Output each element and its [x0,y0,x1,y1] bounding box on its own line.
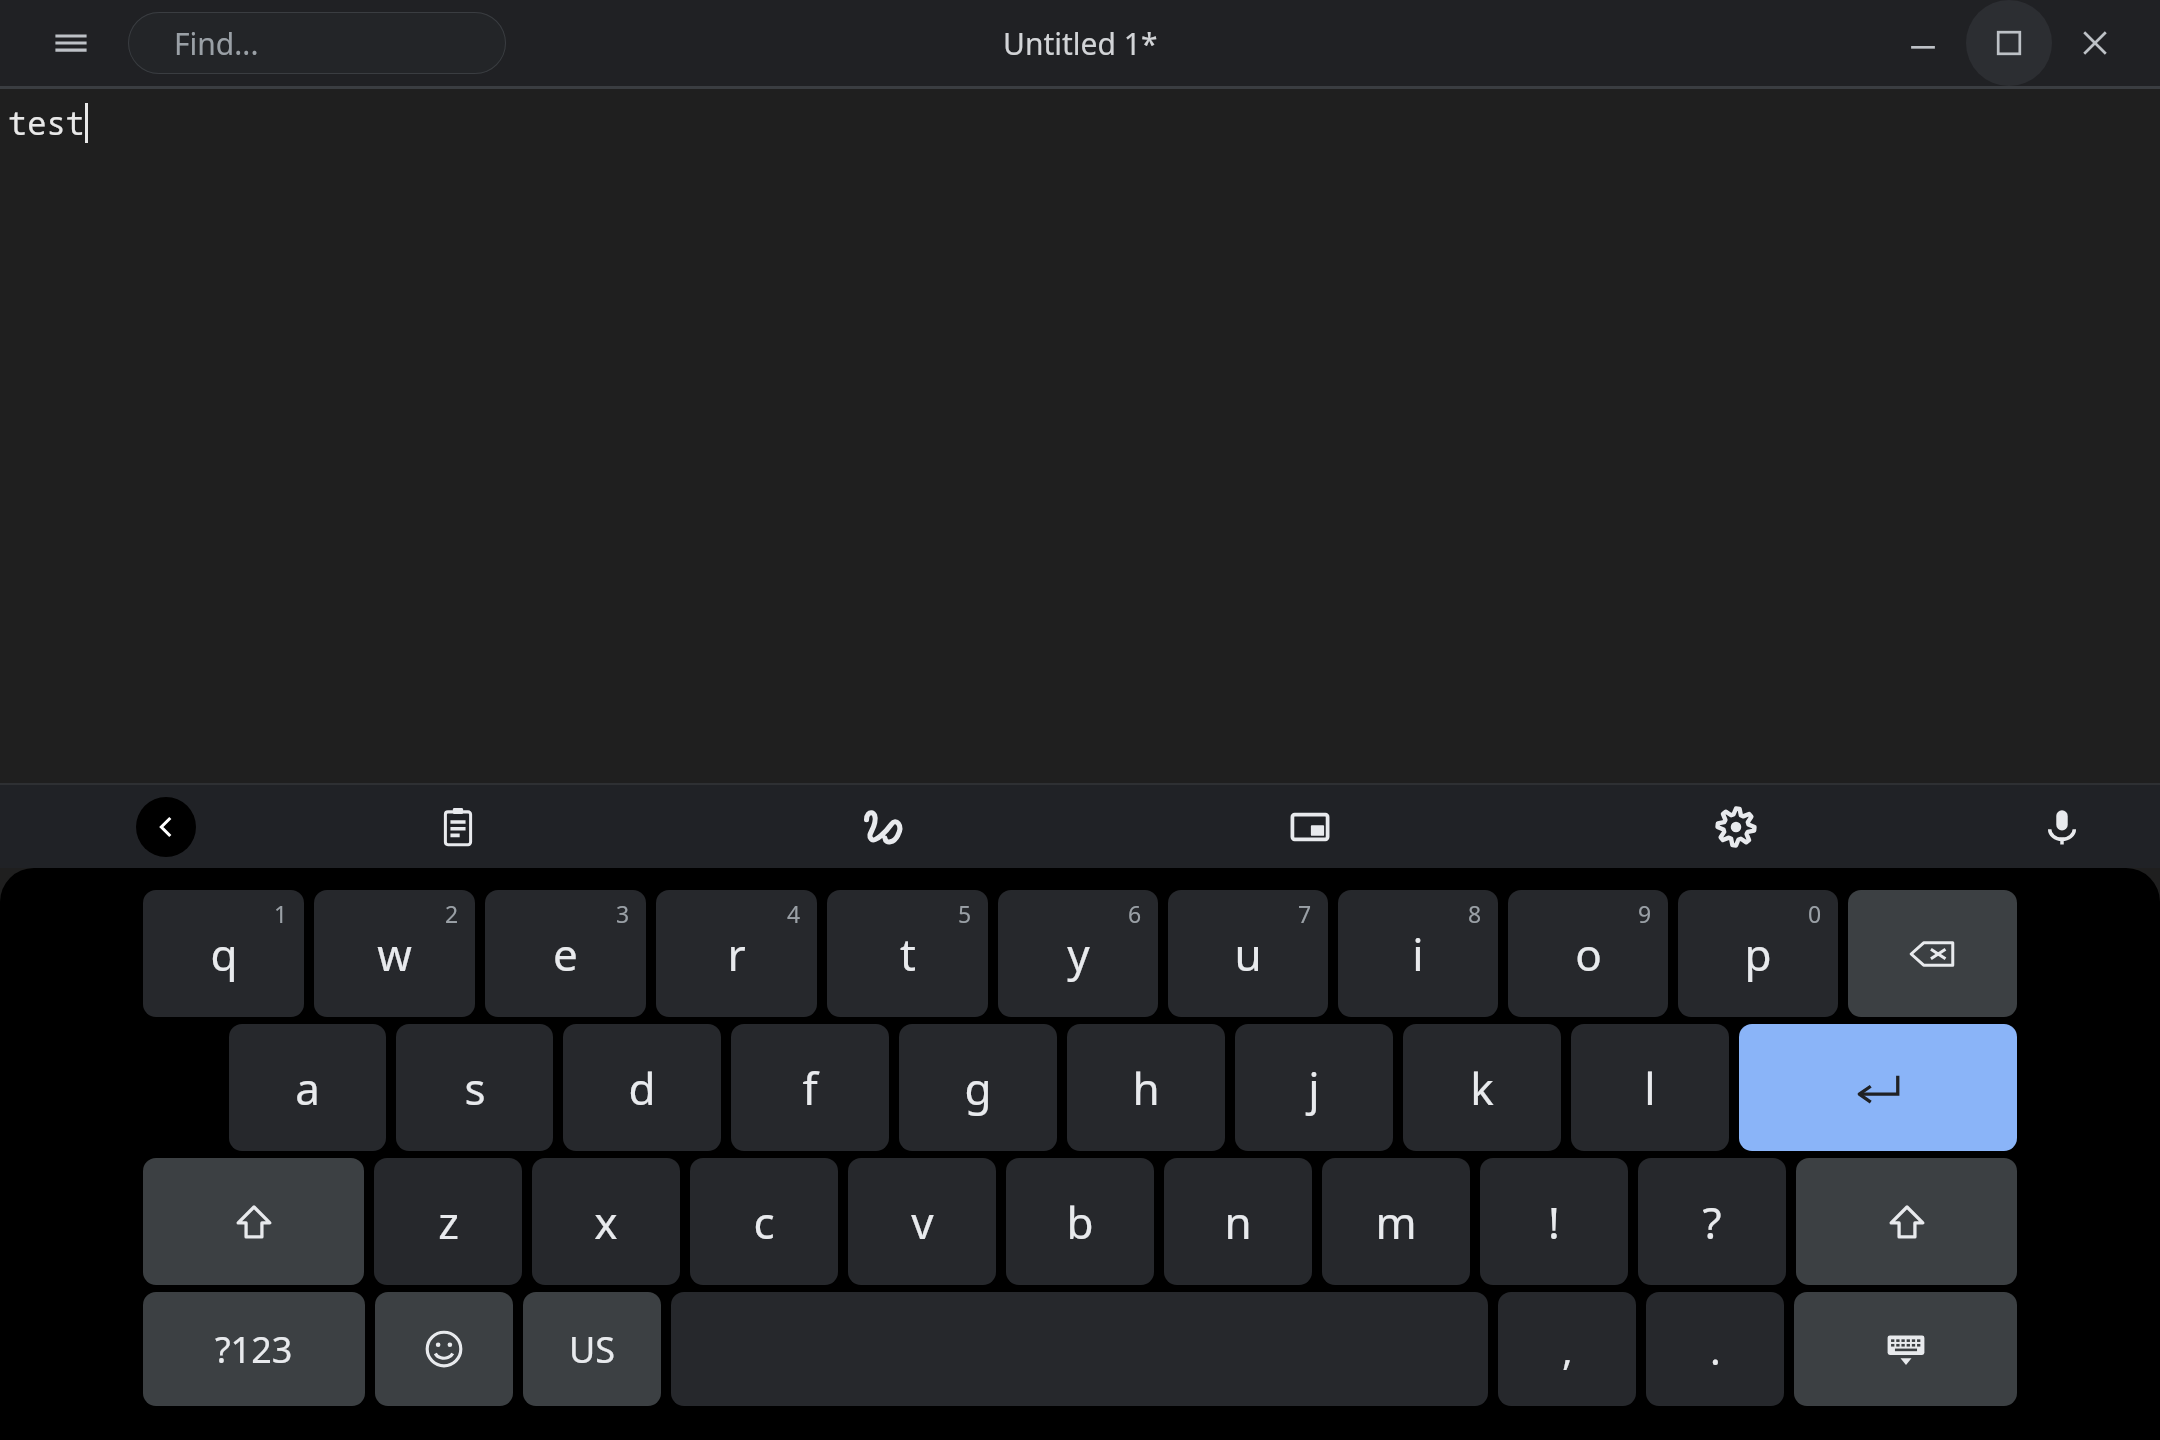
staticText: d [628,1058,656,1118]
staticText: l [1644,1058,1656,1118]
staticText: r [727,924,746,984]
staticText: w [377,924,412,984]
staticText: q [210,924,238,984]
staticText: 8 [1468,898,1482,929]
button[interactable]: ? [1638,1158,1786,1285]
button[interactable]: r [656,890,817,1017]
button[interactable]: ! [1480,1158,1628,1285]
staticText: 2 [445,898,459,929]
button[interactable]: f [731,1024,889,1151]
staticText: h [1132,1058,1160,1118]
staticText: 9 [1638,898,1652,929]
staticText: Untitled 1* [1003,23,1158,64]
button[interactable]: p [1678,890,1838,1017]
button[interactable]: Handwriting [842,785,926,868]
button[interactable]: z [374,1158,522,1285]
staticText: 5 [958,898,972,929]
button[interactable]: j [1235,1024,1393,1151]
staticText: ?123 [215,1325,293,1374]
button[interactable]: v [848,1158,996,1285]
staticText: 4 [787,898,801,929]
button[interactable]: Voice input [2020,785,2104,868]
button[interactable]: Minimize [1880,0,1966,86]
button[interactable]: Shift [1796,1158,2017,1285]
button[interactable]: . [1646,1292,1784,1406]
button[interactable]: US [523,1292,661,1406]
button[interactable]: k [1403,1024,1561,1151]
button[interactable]: d [563,1024,721,1151]
button[interactable]: Floating keyboard [1268,785,1352,868]
button[interactable]: e [485,890,646,1017]
button[interactable]: o [1508,890,1668,1017]
staticText: ? [1702,1192,1722,1252]
staticText: x [594,1192,618,1252]
button[interactable]: Back [136,797,196,857]
button[interactable]: a [229,1024,386,1151]
staticText: y [1067,924,1090,984]
button[interactable]: x [532,1158,680,1285]
staticText: 0 [1808,898,1822,929]
button[interactable]: l [1571,1024,1729,1151]
staticText: f [802,1058,818,1118]
button[interactable]: Menu [40,12,102,74]
button[interactable]: g [899,1024,1057,1151]
staticText: v [911,1192,934,1252]
staticText: b [1066,1192,1094,1252]
staticText: i [1412,924,1424,984]
staticText: test [8,101,85,145]
button[interactable]: Settings [1694,785,1778,868]
button[interactable]: Shift [143,1158,364,1285]
button[interactable]: n [1164,1158,1312,1285]
staticText: p [1744,924,1772,984]
button[interactable]: q [143,890,304,1017]
button[interactable]: s [396,1024,553,1151]
staticText: Find... [174,23,259,64]
button[interactable]: Enter [1739,1024,2017,1151]
staticText: 6 [1128,898,1142,929]
button[interactable]: c [690,1158,838,1285]
button[interactable]: , [1498,1292,1636,1406]
button[interactable]: h [1067,1024,1225,1151]
staticText: 7 [1298,898,1312,929]
staticText: u [1234,924,1262,984]
button[interactable]: Find... [128,12,506,74]
button[interactable]: b [1006,1158,1154,1285]
button[interactable]: y [998,890,1158,1017]
button[interactable]: Backspace [1848,890,2017,1017]
staticText: t [900,924,916,984]
staticText: . [1710,1322,1721,1376]
button[interactable]: Hide keyboard [1794,1292,2017,1406]
staticText: j [1308,1058,1320,1118]
staticText: a [295,1058,320,1118]
button[interactable]: Clipboard [416,785,500,868]
button[interactable]: ?123 [143,1292,365,1406]
staticText: 1 [274,898,288,929]
staticText: o [1575,924,1602,984]
button[interactable]: w [314,890,475,1017]
staticText: US [569,1325,616,1374]
staticText: e [553,924,578,984]
staticText: , [1562,1322,1573,1376]
staticText: g [964,1058,992,1118]
staticText: c [753,1192,775,1252]
button[interactable]: Close [2052,0,2138,86]
staticText: ! [1548,1192,1560,1252]
staticText: m [1375,1192,1417,1252]
staticText: s [464,1058,486,1118]
button[interactable]: Maximize [1966,0,2052,86]
button[interactable]: i [1338,890,1498,1017]
staticText: z [438,1192,459,1252]
button[interactable]: u [1168,890,1328,1017]
staticText: 3 [616,898,630,929]
button[interactable]: t [827,890,988,1017]
staticText: n [1224,1192,1252,1252]
button[interactable]: m [1322,1158,1470,1285]
staticText: k [1470,1058,1494,1118]
button[interactable]: Emoji [375,1292,513,1406]
